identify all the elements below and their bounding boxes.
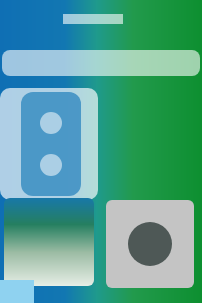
button[interactable] (0, 88, 98, 200)
button[interactable] (106, 200, 194, 288)
button[interactable] (2, 50, 200, 76)
button[interactable] (0, 0, 202, 34)
button[interactable] (4, 198, 94, 286)
